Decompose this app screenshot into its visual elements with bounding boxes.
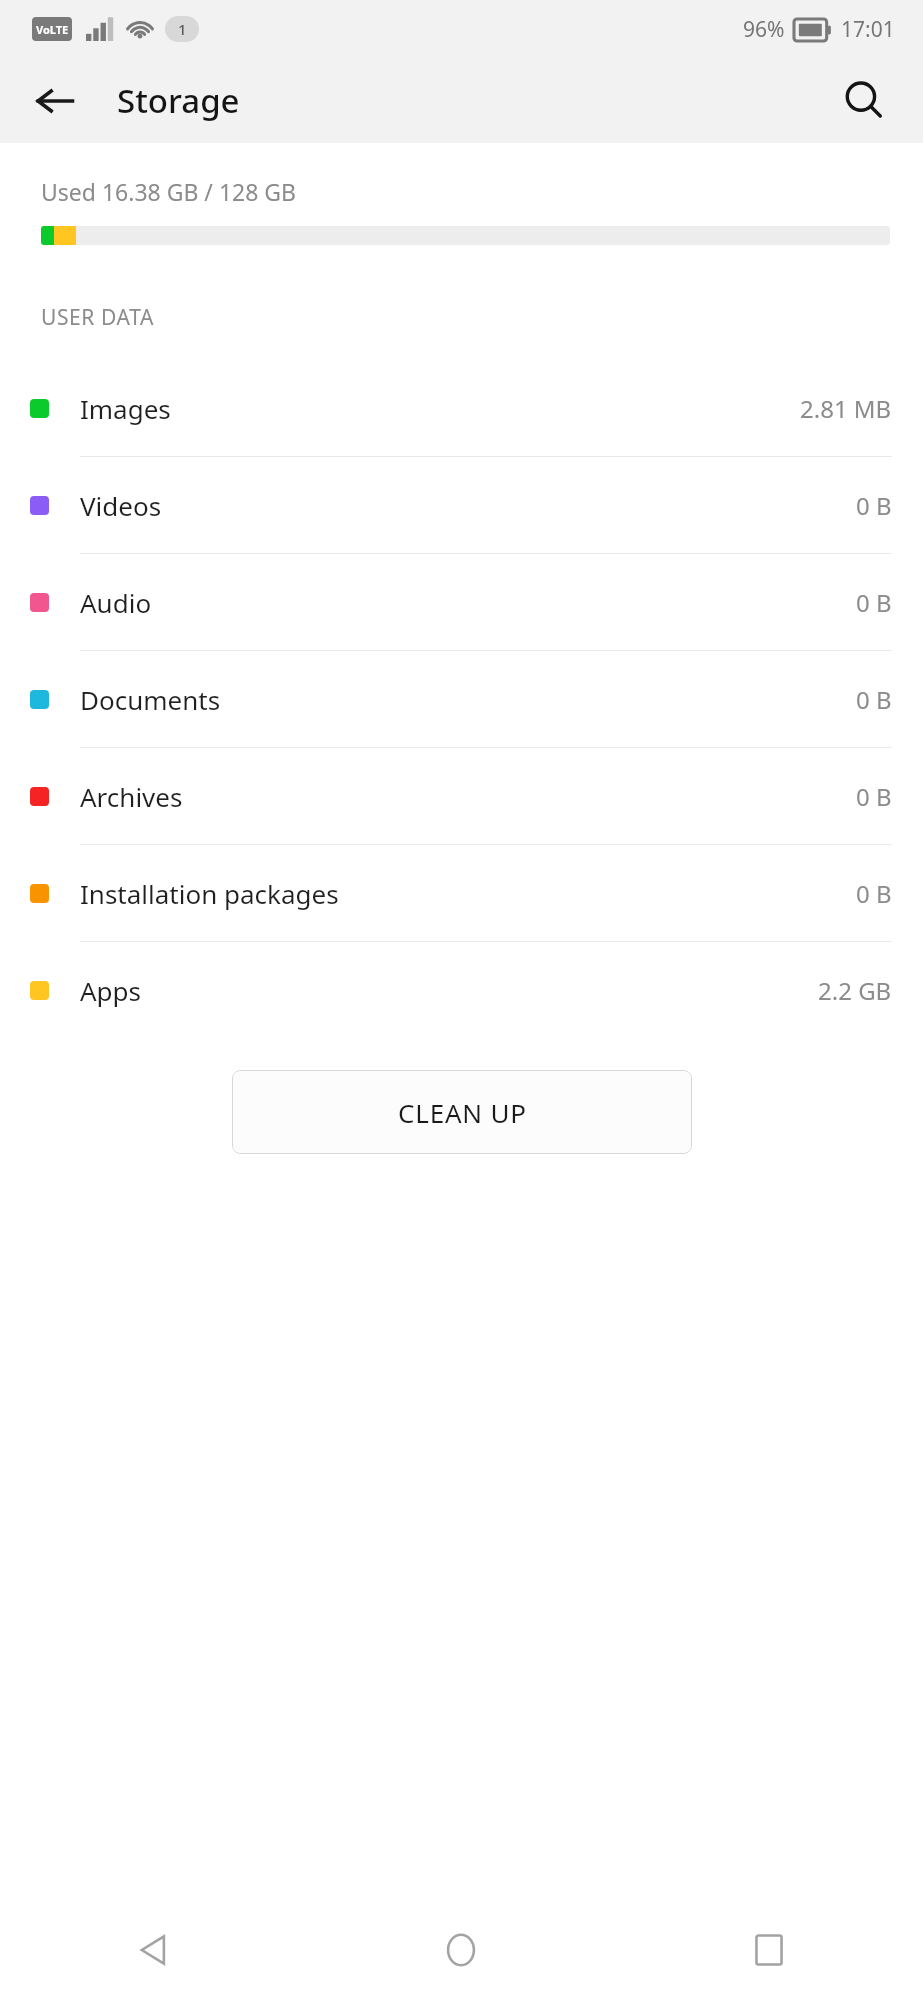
button[interactable]: Images: [0, 360, 923, 457]
staticText: Storage: [117, 78, 240, 123]
button[interactable]: Documents: [0, 651, 923, 748]
button[interactable]: Archives: [0, 748, 923, 845]
button[interactable]: Audio: [0, 554, 923, 651]
staticText: 0 B: [856, 489, 892, 522]
button[interactable]: Back: [22, 68, 88, 134]
button[interactable]: Apps: [0, 942, 923, 1038]
button[interactable]: Recent apps: [615, 1900, 923, 2000]
button[interactable]: Videos: [0, 457, 923, 554]
staticText: Documents: [80, 682, 221, 717]
button[interactable]: Search: [829, 66, 899, 136]
staticText: 0 B: [856, 683, 892, 716]
staticText: 0 B: [856, 877, 892, 910]
staticText: Used 16.38 GB / 128 GB: [41, 176, 297, 207]
staticText: 0 B: [856, 586, 892, 619]
staticText: 2.81 MB: [800, 392, 892, 425]
staticText: Apps: [80, 973, 142, 1008]
staticText: 96%: [743, 15, 785, 44]
staticText: 17:01: [841, 15, 895, 44]
staticText: Videos: [80, 488, 162, 523]
staticText: 0 B: [856, 780, 892, 813]
button[interactable]: CLEAN UP: [232, 1070, 692, 1154]
button[interactable]: Installation packages: [0, 845, 923, 942]
staticText: 2.2 GB: [818, 974, 892, 1007]
staticText: Archives: [80, 779, 183, 814]
staticText: USER DATA: [41, 303, 154, 332]
staticText: VoLTE: [36, 22, 69, 37]
button[interactable]: Back: [0, 1900, 307, 2000]
staticText: Images: [80, 391, 171, 426]
button[interactable]: Home: [307, 1900, 615, 2000]
staticText: Installation packages: [80, 876, 339, 911]
staticText: 1: [178, 19, 187, 39]
staticText: Audio: [80, 585, 152, 620]
staticText: CLEAN UP: [398, 1095, 527, 1130]
